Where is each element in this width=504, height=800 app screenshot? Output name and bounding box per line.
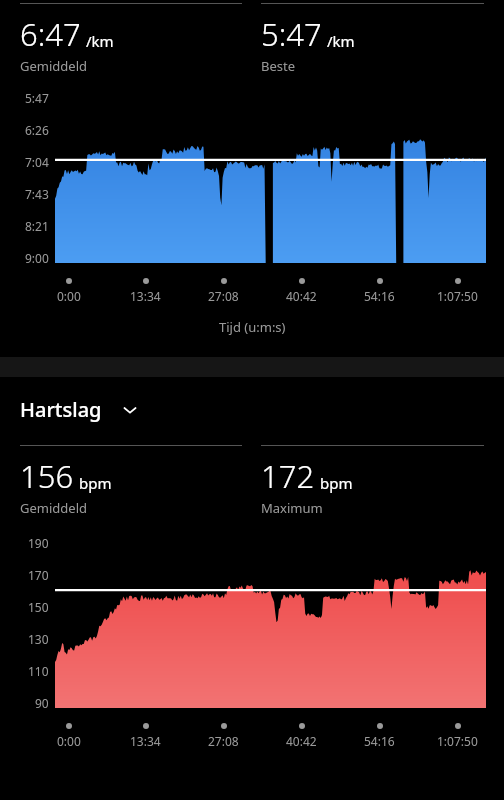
staticText: bpm [79, 473, 112, 493]
staticText: Maximum [261, 499, 323, 517]
staticText: Hartslag [20, 396, 102, 423]
staticText: Beste [261, 57, 296, 75]
staticText: 6:47 [20, 13, 81, 55]
staticText: 7:43 [25, 186, 49, 202]
other: Expand heart rate section [120, 400, 140, 420]
staticText: Gemiddeld [20, 57, 87, 75]
staticText: 130 [28, 631, 49, 647]
button[interactable]: 5:47 [261, 3, 484, 73]
staticText: 27:08 [208, 733, 239, 749]
staticText: 40:42 [286, 288, 317, 304]
staticText: 6:26 [25, 122, 49, 138]
button[interactable]: 156 [20, 445, 242, 515]
staticText: /km [86, 31, 114, 51]
staticText: /km [327, 31, 355, 51]
staticText: 0:00 [57, 733, 81, 749]
staticText: 5:47 [261, 13, 322, 55]
staticText: 190 [28, 535, 49, 551]
staticText: Tijd (u:m:s) [219, 318, 286, 336]
staticText: 54:16 [364, 733, 395, 749]
staticText: 13:34 [130, 733, 161, 749]
staticText: 1:07:50 [437, 288, 478, 304]
staticText: bpm [320, 473, 353, 493]
staticText: 9:00 [25, 250, 49, 266]
staticText: 8:21 [25, 218, 49, 234]
staticText: 54:16 [364, 288, 395, 304]
staticText: 170 [28, 567, 49, 583]
staticText: 156 [20, 455, 74, 497]
staticText: 0:00 [57, 288, 81, 304]
staticText: 150 [28, 599, 49, 615]
staticText: 27:08 [208, 288, 239, 304]
button[interactable]: Hartslag [20, 396, 484, 423]
staticText: 90 [35, 695, 49, 711]
staticText: 172 [261, 455, 315, 497]
staticText: 110 [28, 663, 49, 679]
button[interactable]: 6:47 [20, 3, 242, 73]
staticText: Gemiddeld [20, 499, 87, 517]
staticText: 40:42 [286, 733, 317, 749]
staticText: 1:07:50 [437, 733, 478, 749]
staticText: 13:34 [130, 288, 161, 304]
staticText: 7:04 [25, 154, 49, 170]
staticText: 5:47 [25, 90, 49, 106]
button[interactable]: 172 [261, 445, 484, 515]
